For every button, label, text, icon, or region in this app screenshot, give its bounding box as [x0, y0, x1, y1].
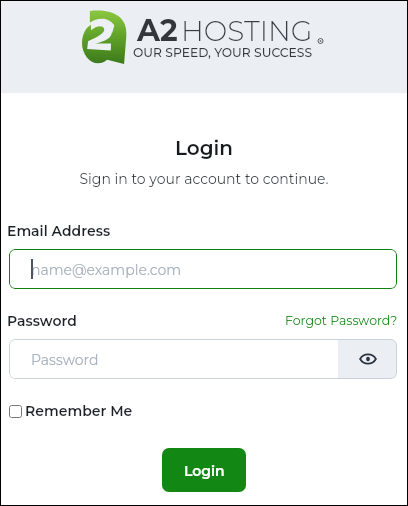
staticText: OUR SPEED, YOUR SUCCESS [133, 45, 313, 60]
button[interactable]: Forgot Password? [285, 313, 398, 328]
staticText: Sign in to your account to continue. [1, 170, 407, 187]
staticText: Login [1, 136, 407, 160]
staticText: HOSTING [181, 14, 313, 48]
button[interactable]: Login [162, 448, 246, 492]
staticText: Password [31, 351, 99, 368]
staticText: name@example.com [31, 261, 182, 278]
button[interactable]: Remember Me [9, 402, 133, 419]
button[interactable]: Password [9, 339, 338, 379]
staticText: Password [7, 312, 77, 329]
staticText: Remember Me [25, 402, 133, 419]
staticText: Forgot Password? [285, 313, 398, 328]
staticText: Email Address [7, 222, 111, 239]
button[interactable]: name@example.com [9, 249, 397, 289]
staticText: A2 [137, 12, 178, 49]
button[interactable]: Show password [338, 339, 397, 379]
staticText: Login [184, 462, 225, 479]
